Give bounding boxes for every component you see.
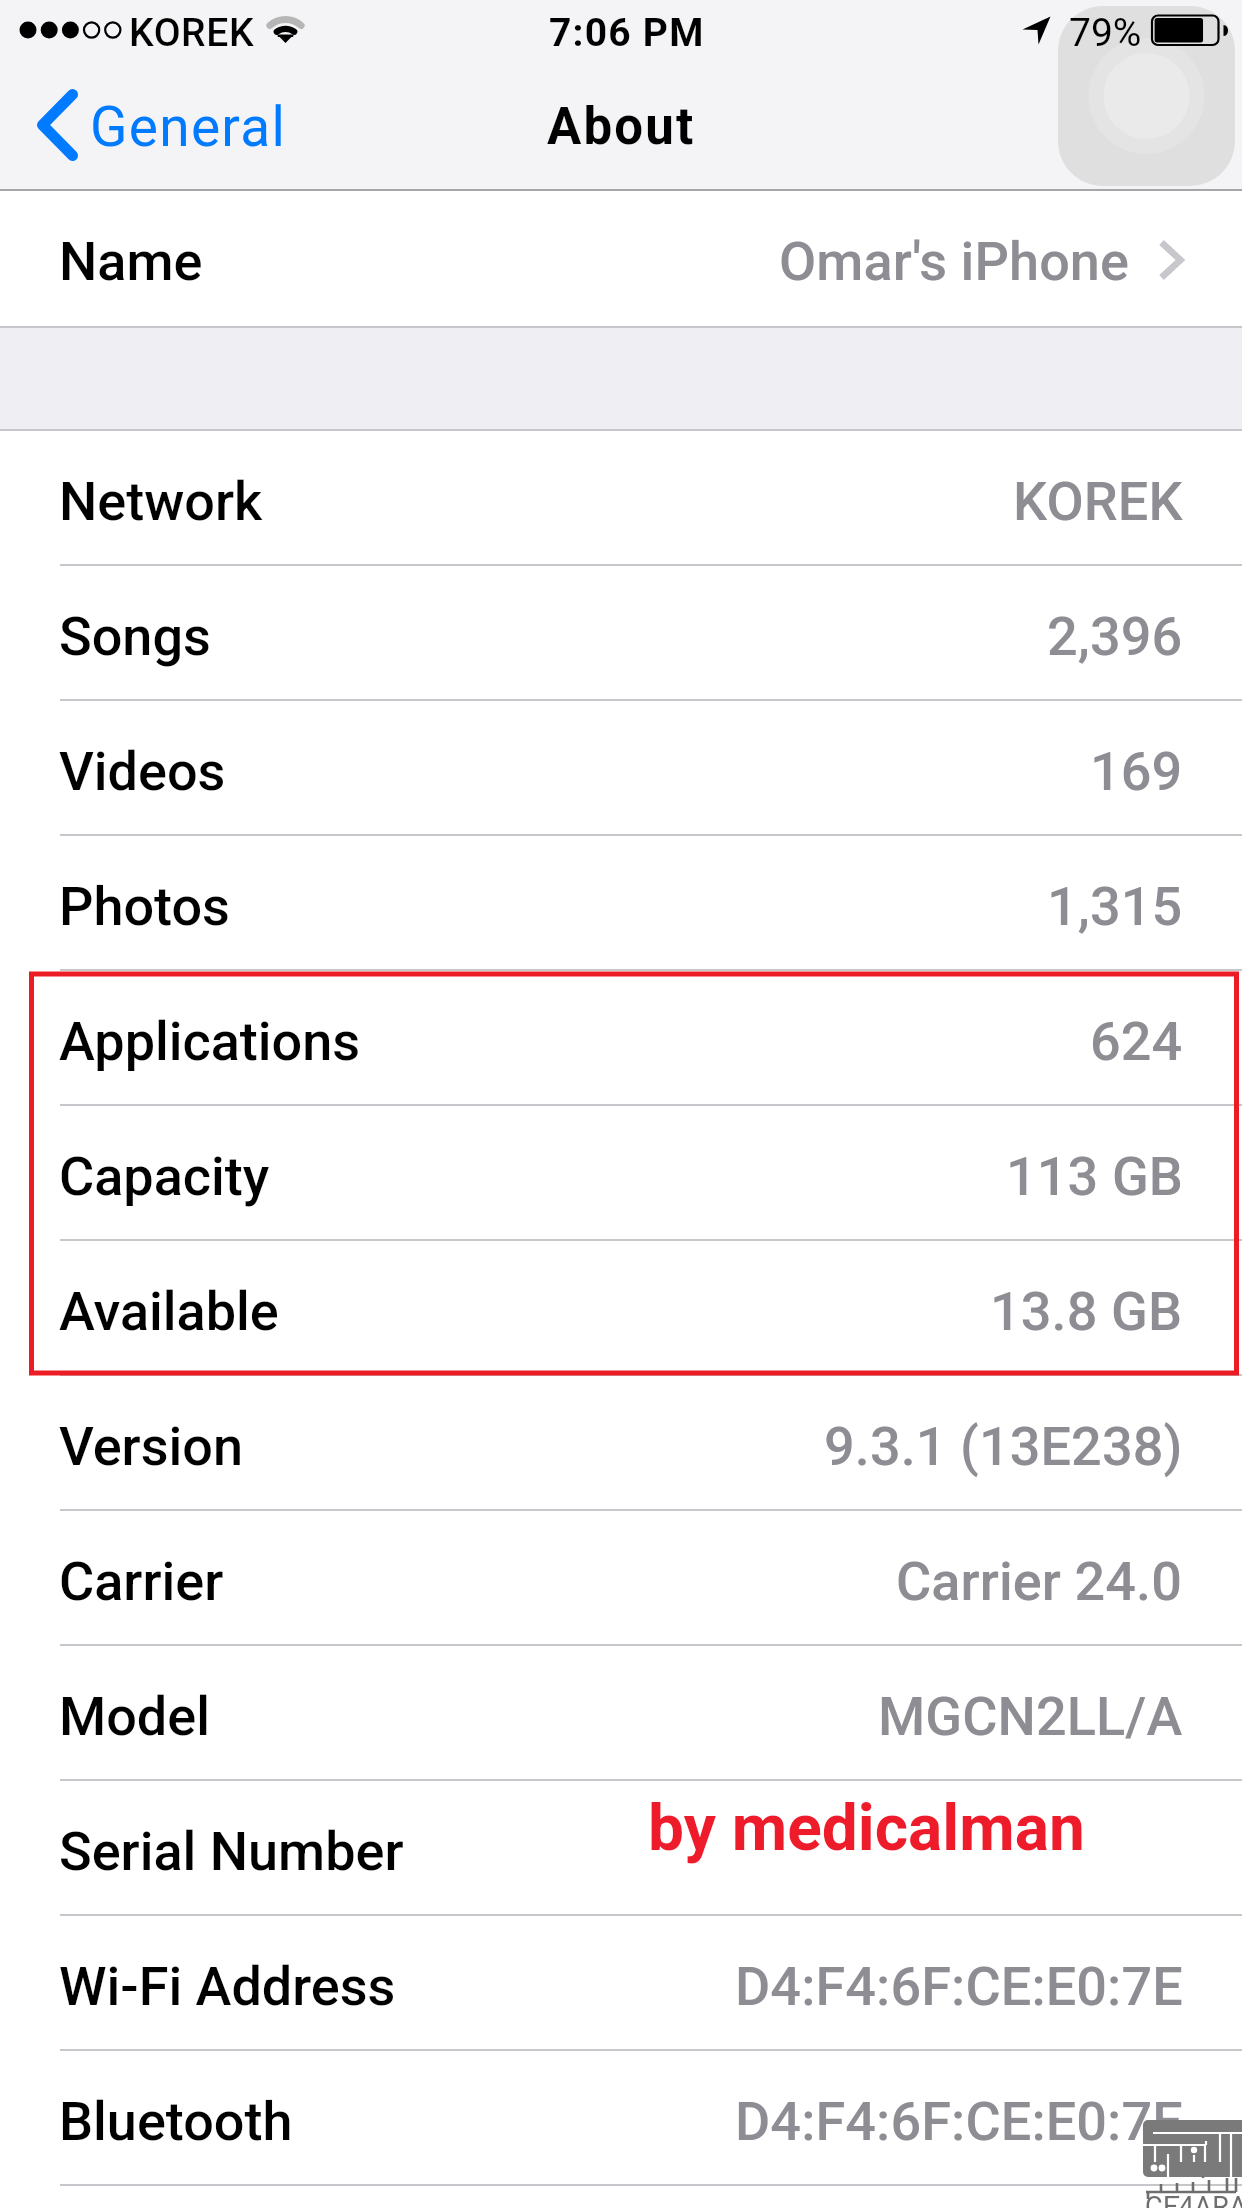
staticText: Songs xyxy=(59,605,211,668)
staticText: Videos xyxy=(59,740,226,803)
button[interactable]: Capacity xyxy=(0,1106,1242,1241)
staticText: Serial Number xyxy=(59,1820,404,1883)
staticText: 113 GB xyxy=(1006,1145,1183,1208)
staticText: Network xyxy=(59,470,263,533)
staticText: 79% xyxy=(1069,10,1142,56)
staticText: KOREK xyxy=(129,10,255,56)
button[interactable]: AssistiveTouch xyxy=(1058,6,1235,186)
staticText: 169 xyxy=(1090,740,1183,803)
button[interactable]: Serial Number xyxy=(0,1781,1242,1916)
button[interactable]: Network xyxy=(0,431,1242,566)
button[interactable]: Wi-Fi Address xyxy=(0,1916,1242,2051)
button[interactable]: Videos xyxy=(0,701,1242,836)
button[interactable]: General xyxy=(37,89,287,161)
staticText: Photos xyxy=(59,875,230,938)
staticText: Model xyxy=(59,1685,210,1748)
staticText: Applications xyxy=(59,1010,361,1073)
staticText: CE4ARAB.COM xyxy=(1145,2191,1242,2208)
staticText: D4:F4:6F:CE:E0:7E xyxy=(735,1955,1183,2018)
staticText: Available xyxy=(59,1280,279,1343)
staticText: MGCN2LL/A xyxy=(878,1685,1183,1748)
staticText: by medicalman xyxy=(648,1791,1085,1866)
button[interactable]: Name xyxy=(0,191,1242,326)
staticText: About xyxy=(547,97,696,157)
button[interactable]: Photos xyxy=(0,836,1242,971)
staticText: 7:06 PM xyxy=(549,10,705,56)
button[interactable]: Available xyxy=(0,1241,1242,1376)
staticText: KOREK xyxy=(1013,470,1183,533)
staticText: Capacity xyxy=(59,1145,270,1208)
staticText: Version xyxy=(59,1415,243,1478)
button[interactable]: Version xyxy=(0,1376,1242,1511)
button[interactable]: Model xyxy=(0,1646,1242,1781)
staticText: 13.8 GB xyxy=(990,1280,1183,1343)
staticText: Carrier 24.0 xyxy=(896,1550,1183,1613)
button[interactable]: Songs xyxy=(0,566,1242,701)
button[interactable]: Carrier xyxy=(0,1511,1242,1646)
staticText: Carrier xyxy=(59,1550,224,1613)
staticText: 9.3.1 (13E238) xyxy=(824,1415,1183,1478)
staticText: Name xyxy=(59,230,203,293)
staticText: Omar's iPhone xyxy=(779,230,1130,293)
staticText: Wi-Fi Address xyxy=(59,1955,396,2018)
staticText: General xyxy=(90,95,287,159)
staticText: 2,396 xyxy=(1047,605,1183,668)
button[interactable]: Bluetooth xyxy=(0,2051,1242,2186)
staticText: D4:F4:6F:CE:E0:7E xyxy=(735,2090,1183,2153)
staticText: 624 xyxy=(1090,1010,1183,1073)
button[interactable]: Applications xyxy=(0,971,1242,1106)
staticText: 1,315 xyxy=(1047,875,1183,938)
staticText: Bluetooth xyxy=(59,2090,293,2153)
